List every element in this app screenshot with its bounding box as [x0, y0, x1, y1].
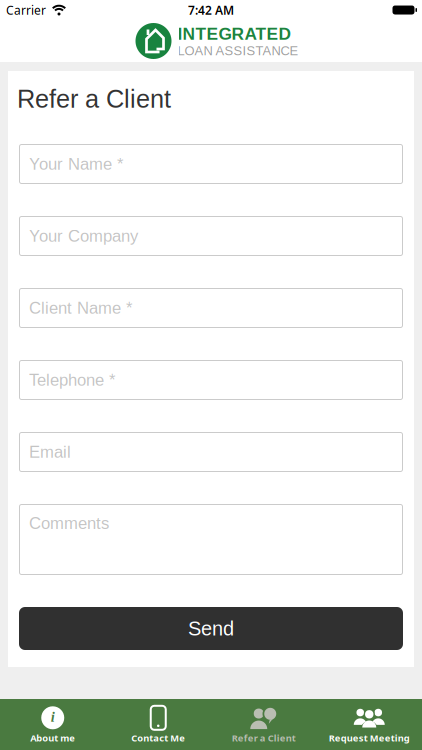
- staticText: Request Meeting: [329, 732, 410, 744]
- staticText: i: [51, 709, 55, 725]
- staticText: Refer a Client: [17, 85, 171, 113]
- staticText: Your Company: [29, 227, 138, 245]
- staticText: Contact Me: [131, 732, 185, 744]
- button[interactable]: Request Meeting: [316, 699, 422, 750]
- button[interactable]: Telephone *: [19, 360, 403, 400]
- staticText: 7:42 AM: [188, 2, 234, 18]
- staticText: Carrier: [6, 2, 46, 18]
- button[interactable]: Email: [19, 432, 403, 472]
- staticText: Client Name *: [29, 299, 132, 317]
- button[interactable]: Your Company: [19, 216, 403, 256]
- staticText: Your Name *: [29, 155, 123, 173]
- button[interactable]: Comments: [19, 504, 403, 575]
- button[interactable]: Your Name *: [19, 144, 403, 184]
- button[interactable]: About me: [0, 699, 105, 750]
- button[interactable]: Client Name *: [19, 288, 403, 328]
- button[interactable]: Refer a Client: [211, 699, 316, 750]
- button[interactable]: Send: [19, 607, 403, 650]
- staticText: Send: [188, 617, 234, 640]
- staticText: Refer a Client: [232, 732, 296, 744]
- staticText: About me: [30, 732, 75, 744]
- staticText: Comments: [29, 514, 109, 533]
- staticText: Email: [29, 443, 71, 461]
- staticText: LOAN ASSISTANCE: [177, 43, 298, 58]
- button[interactable]: Contact Me: [105, 699, 211, 750]
- staticText: Telephone *: [29, 371, 115, 389]
- staticText: INTEGRATED: [177, 24, 291, 43]
